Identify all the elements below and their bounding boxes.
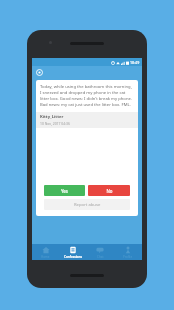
button[interactable]: Chat	[86, 244, 114, 260]
button[interactable]: Home	[32, 244, 59, 260]
staticText: Today, while using the bathroom this mor…	[40, 84, 134, 108]
button[interactable]: Today, while using the bathroom this mor…	[36, 80, 138, 216]
button[interactable]: No	[88, 185, 130, 196]
staticText: Kitty_Litter	[40, 114, 64, 120]
staticText: 18:49	[130, 60, 140, 65]
staticText: Yes	[61, 188, 68, 194]
button[interactable]: Report abuse	[44, 199, 130, 210]
staticText: Profile	[123, 255, 133, 259]
button[interactable]: Yes	[44, 185, 85, 196]
button[interactable]: App logo	[35, 68, 44, 77]
staticText: Home	[41, 255, 50, 259]
staticText: Chat	[97, 255, 104, 259]
button[interactable]: Confessions	[59, 244, 86, 260]
staticText: No	[106, 188, 113, 194]
staticText: 10 Nov, 2017 04:36	[40, 121, 71, 126]
staticText: Report abuse	[74, 202, 101, 208]
button[interactable]: Profile	[114, 244, 142, 260]
staticText: Confessions	[64, 255, 82, 259]
